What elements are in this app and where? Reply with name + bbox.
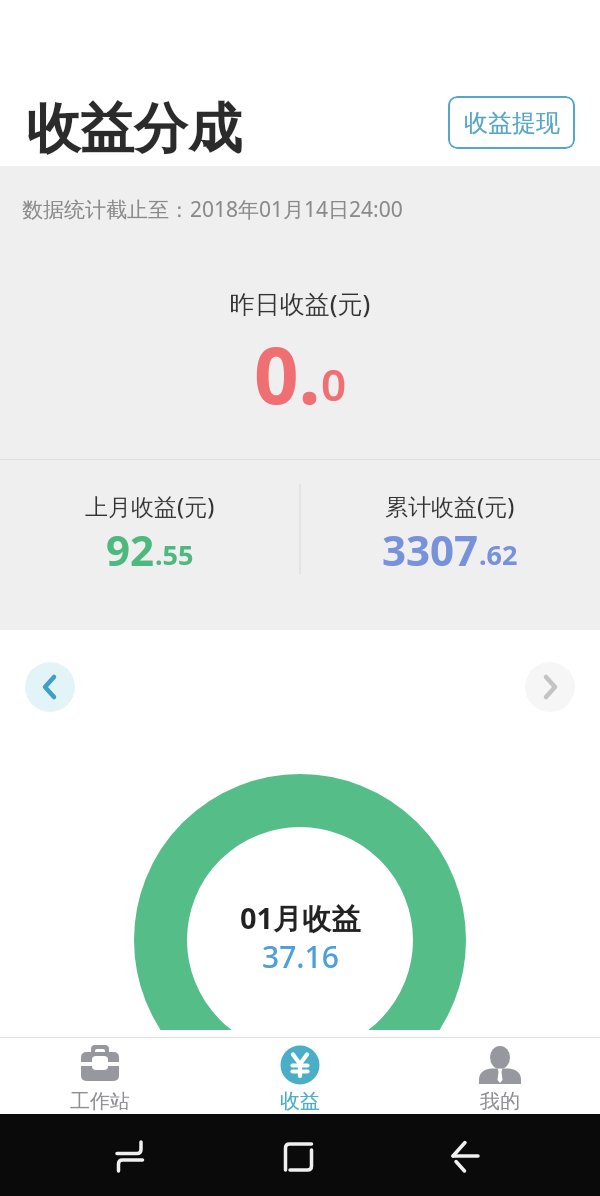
staticText: 0. [254, 321, 321, 427]
staticText: 收益分成 [26, 95, 242, 163]
staticText: 37.16 [262, 936, 339, 977]
staticText: 3307 [382, 521, 479, 578]
staticText: 92 [106, 521, 155, 578]
staticText: 上月收益(元) [85, 490, 215, 521]
staticText: 累计收益(元) [385, 490, 515, 521]
staticText: 01月收益 [240, 898, 361, 938]
staticText: 昨日收益(元) [0, 286, 600, 320]
button[interactable] [525, 662, 575, 712]
staticText: 收益 [280, 1089, 320, 1114]
staticText: .55 [155, 536, 194, 573]
staticText: 0 [321, 354, 347, 414]
button[interactable]: 收益提现 [448, 96, 575, 149]
button[interactable]: 我的 [400, 1030, 600, 1114]
staticText: 收益提现 [464, 108, 560, 138]
button[interactable]: 工作站 [0, 1030, 200, 1114]
staticText: .62 [479, 536, 518, 573]
staticText: 数据统计截止至：2018年01月14日24:00 [22, 195, 403, 224]
button[interactable] [25, 662, 75, 712]
staticText: 工作站 [70, 1089, 130, 1114]
button[interactable]: 累计收益(元) [300, 460, 600, 630]
button[interactable]: 收益 [200, 1030, 400, 1114]
staticText: 我的 [480, 1089, 520, 1114]
button[interactable]: 上月收益(元) [0, 460, 300, 630]
